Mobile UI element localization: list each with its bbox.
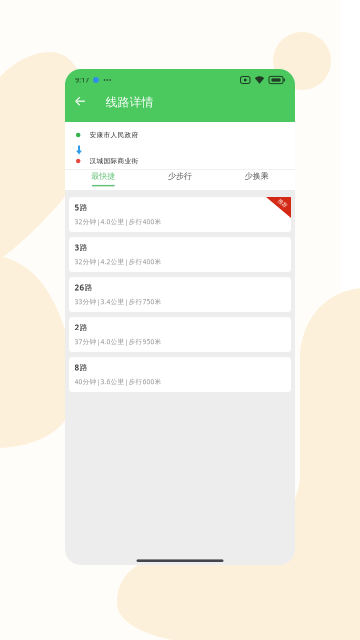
staticText: 汉城国际商业街 bbox=[89, 157, 138, 165]
button[interactable]: 少步行 bbox=[142, 170, 218, 190]
button[interactable]: 5路 bbox=[69, 197, 291, 232]
staticText: 线路详情 bbox=[105, 95, 153, 110]
staticText: 9:17 bbox=[75, 76, 89, 84]
button[interactable]: 26路 bbox=[69, 277, 291, 312]
staticText: 少换乘 bbox=[245, 171, 269, 181]
button[interactable]: 少换乘 bbox=[218, 170, 295, 190]
staticText: 推荐 bbox=[277, 200, 287, 207]
button[interactable]: 最快捷 bbox=[65, 170, 142, 190]
staticText: 32分钟|4.2公里|步行400米 bbox=[74, 257, 161, 266]
staticText: 安康市人民政府 bbox=[89, 131, 138, 139]
staticText: 5路 bbox=[74, 202, 87, 213]
staticText: 3路 bbox=[74, 242, 87, 253]
staticText: 8路 bbox=[74, 362, 87, 373]
staticText: 37分钟|4.0公里|步行950米 bbox=[74, 337, 161, 346]
button[interactable]: 3路 bbox=[69, 237, 291, 272]
staticText: 40分钟|3.6公里|步行600米 bbox=[74, 377, 161, 386]
staticText: 少步行 bbox=[168, 171, 192, 181]
staticText: 32分钟|4.0公里|步行400米 bbox=[74, 217, 161, 226]
staticText: 最快捷 bbox=[91, 171, 115, 181]
staticText: 33分钟|3.4公里|步行750米 bbox=[74, 297, 161, 306]
button[interactable]: Back bbox=[71, 91, 89, 122]
button[interactable]: 线路详情 bbox=[105, 91, 153, 122]
staticText: 2路 bbox=[74, 322, 87, 333]
staticText: 26路 bbox=[74, 282, 92, 293]
button[interactable]: 8路 bbox=[69, 357, 291, 392]
button[interactable]: 2路 bbox=[69, 317, 291, 352]
